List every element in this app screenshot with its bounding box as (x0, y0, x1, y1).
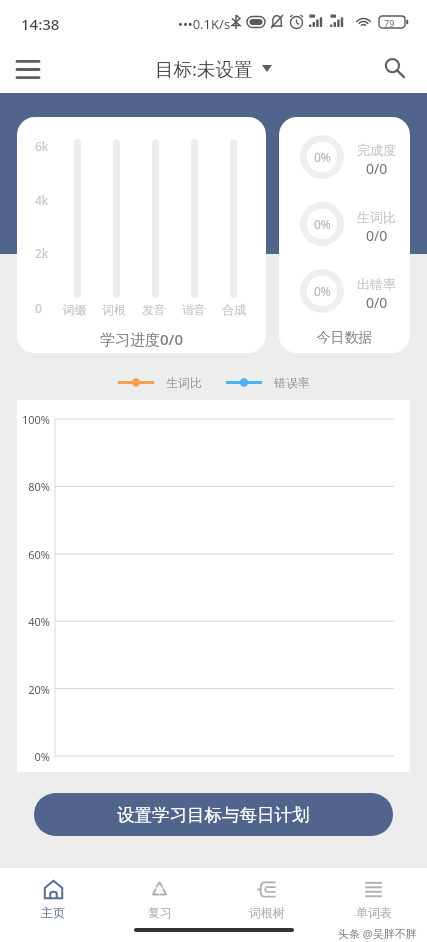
staticText: 出错率 (357, 276, 396, 292)
staticText: 主页 (41, 905, 65, 920)
button[interactable]: 设置学习目标与每日计划 (34, 793, 393, 836)
staticText: 词缀 (55, 302, 94, 317)
staticText: 头条 @吴胖不胖 (338, 926, 417, 941)
staticText: 40% (17, 614, 50, 629)
staticText: 词根树 (249, 905, 285, 920)
button[interactable]: 主页 (0, 868, 106, 925)
staticText: 0/0 (366, 226, 388, 245)
staticText: 发音 (134, 302, 174, 317)
button[interactable]: 6k (17, 117, 266, 353)
staticText: 单词表 (356, 905, 392, 920)
button[interactable]: 复习 (106, 868, 213, 925)
staticText: 生词比 (166, 375, 202, 390)
staticText: 生词比 (357, 209, 396, 225)
staticText: 80% (17, 479, 50, 494)
staticText: 学习进度0/0 (17, 329, 266, 349)
staticText: 6k (35, 138, 49, 154)
button[interactable]: 目标:未设置 (155, 56, 272, 81)
staticText: 今日数据 (279, 329, 410, 347)
staticText: 0% (314, 149, 331, 165)
staticText: 0 (35, 300, 42, 316)
button[interactable]: 词根树 (213, 868, 320, 925)
staticText: 词根 (94, 302, 134, 317)
staticText: 错误率 (274, 375, 310, 390)
staticText: 0% (17, 749, 50, 764)
staticText: 完成度 (357, 142, 396, 158)
staticText: 79 (384, 17, 395, 29)
staticText: 60% (17, 547, 50, 562)
button[interactable]: Menu (8, 49, 48, 89)
staticText: 4k (35, 192, 49, 208)
staticText: 复习 (148, 905, 172, 920)
staticText: 100% (17, 412, 50, 427)
staticText: 谐音 (174, 302, 214, 317)
staticText: 14:38 (21, 14, 60, 34)
button[interactable]: 0% (279, 117, 410, 353)
staticText: 设置学习目标与每日计划 (117, 804, 310, 826)
staticText: 目标:未设置 (155, 56, 253, 81)
staticText: 合成 (214, 302, 254, 317)
button[interactable]: Search (375, 49, 415, 89)
staticText: •••0.1K/s (178, 15, 231, 33)
staticText: 0% (314, 216, 331, 232)
staticText: 2k (35, 245, 49, 261)
staticText: 0/0 (366, 293, 388, 312)
staticText: 20% (17, 682, 50, 697)
staticText: 0/0 (366, 159, 388, 178)
staticText: 0% (314, 283, 331, 299)
button[interactable]: 单词表 (320, 868, 427, 925)
